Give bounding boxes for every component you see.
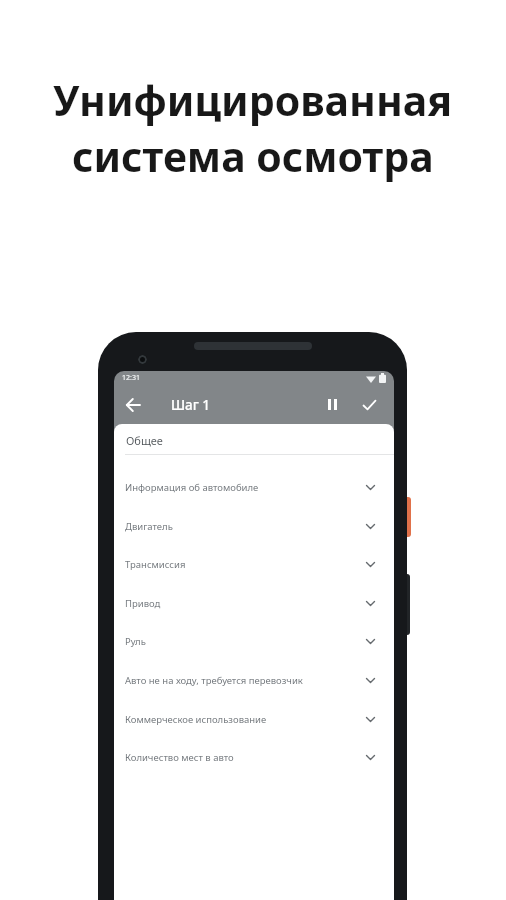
button[interactable]: Привод [125, 589, 375, 617]
staticText: система осмотра [72, 128, 434, 184]
staticText: Коммерческое использование [125, 713, 267, 726]
staticText: Двигатель [125, 520, 173, 533]
button[interactable]: Двигатель [125, 512, 375, 540]
staticText: Информация об автомобиле [125, 481, 259, 494]
staticText: Унифицированная [53, 72, 453, 128]
button[interactable]: Информация об автомобиле [125, 473, 375, 501]
staticText: Руль [125, 635, 146, 648]
button[interactable]: Трансмиссия [125, 550, 375, 578]
staticText: Привод [125, 597, 161, 610]
staticText: Общее [126, 433, 163, 448]
staticText: Авто не на ходу, требуется перевозчик [125, 674, 303, 687]
button[interactable]: Коммерческое использование [125, 705, 375, 733]
button[interactable] [354, 385, 384, 424]
staticText: Шаг 1 [171, 396, 211, 414]
staticText: 12:31 [122, 373, 140, 383]
staticText: Трансмиссия [125, 558, 186, 571]
button[interactable] [114, 385, 152, 424]
button[interactable] [317, 385, 347, 424]
button[interactable]: Руль [125, 627, 375, 655]
button[interactable]: Количество мест в авто [125, 743, 375, 771]
button[interactable]: Авто не на ходу, требуется перевозчик [125, 666, 375, 694]
staticText: Количество мест в авто [125, 751, 234, 764]
